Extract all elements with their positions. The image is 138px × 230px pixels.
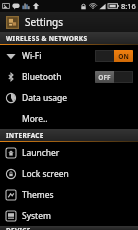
button[interactable]: System xyxy=(0,205,138,226)
button[interactable]: Lock screen xyxy=(0,163,138,184)
staticText: Themes xyxy=(22,189,54,201)
staticText: 8:16 xyxy=(121,1,136,11)
staticText: DEVICE xyxy=(6,226,31,230)
button[interactable]: Toggle on xyxy=(95,50,133,62)
staticText: ON xyxy=(118,52,129,61)
staticText: Lock screen xyxy=(22,168,69,180)
staticText: Bluetooth xyxy=(22,71,62,83)
staticText: Launcher xyxy=(22,147,60,159)
staticText: System xyxy=(22,210,51,222)
staticText: Settings xyxy=(25,15,64,29)
button[interactable]: More.. xyxy=(0,108,138,129)
button[interactable]: Themes xyxy=(0,184,138,205)
staticText: Wi-Fi xyxy=(22,50,42,62)
staticText: OFF xyxy=(98,73,111,82)
staticText: WIRELESS & NETWORKS xyxy=(6,34,88,43)
button[interactable]: Bluetooth xyxy=(0,66,138,87)
button[interactable]: Data usage xyxy=(0,87,138,108)
staticText: INTERFACE xyxy=(6,131,44,140)
staticText: More.. xyxy=(22,113,48,125)
button[interactable]: Toggle off xyxy=(95,71,133,83)
button[interactable]: Launcher xyxy=(0,142,138,163)
button[interactable]: Wi-Fi xyxy=(0,45,138,66)
staticText: Data usage xyxy=(22,92,68,104)
